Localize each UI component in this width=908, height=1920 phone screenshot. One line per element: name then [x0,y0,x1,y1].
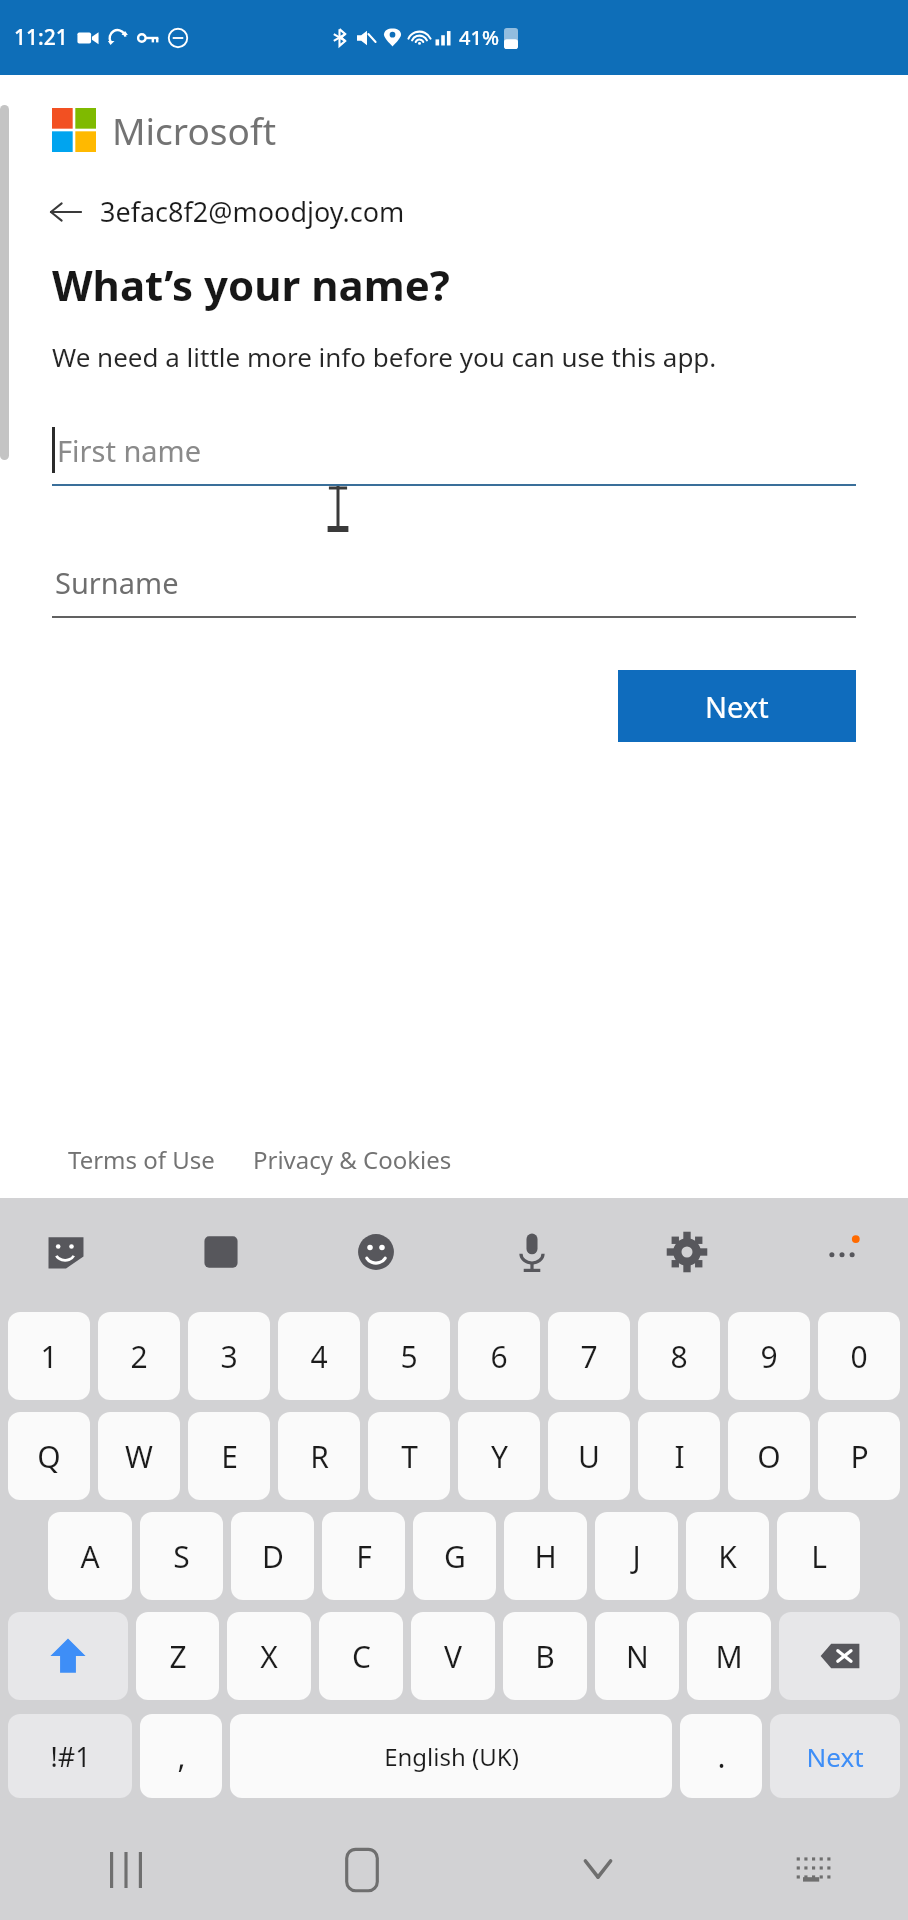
staticText: What’s your name? [52,256,450,313]
button[interactable]: N [595,1612,679,1700]
staticText: C [352,1636,371,1677]
button[interactable]: X [227,1612,311,1700]
staticText: . [717,1736,726,1777]
other: Back [48,194,84,230]
staticText: L [811,1536,827,1577]
button[interactable]: H [504,1512,587,1600]
button[interactable]: Recents [81,1825,171,1915]
button[interactable]: P [818,1412,900,1500]
staticText: 9 [760,1336,778,1377]
button[interactable]: Emoji [344,1220,408,1284]
button[interactable]: First name [52,414,856,486]
button[interactable]: I [638,1412,720,1500]
staticText: R [310,1436,329,1477]
button[interactable]: !#1 [8,1714,132,1798]
button[interactable]: W [98,1412,180,1500]
button[interactable]: A [48,1512,132,1600]
button[interactable]: Privacy & Cookies [253,1143,452,1176]
button[interactable]: English (UK) [230,1714,672,1798]
button[interactable]: More options [810,1220,874,1284]
button[interactable]: Shift [8,1612,128,1700]
button[interactable]: K [686,1512,769,1600]
staticText: , [177,1736,186,1777]
button[interactable]: 9 [728,1312,810,1400]
button[interactable]: U [548,1412,630,1500]
staticText: G [444,1536,466,1577]
staticText: X [260,1636,278,1677]
button[interactable]: V [411,1612,495,1700]
staticText: K [718,1536,737,1577]
button[interactable]: T [368,1412,450,1500]
button[interactable]: Surname [52,546,856,618]
button[interactable]: . [680,1714,762,1798]
button[interactable]: Next [618,670,856,742]
staticText: We need a little more info before you ca… [52,339,717,374]
staticText: U [578,1436,600,1477]
staticText: D [262,1536,284,1577]
staticText: N [626,1636,649,1677]
button[interactable]: Home [317,1825,407,1915]
button[interactable]: Backspace [779,1612,900,1700]
staticText: A [80,1536,100,1577]
staticText: V [444,1636,462,1677]
button[interactable]: Change keyboard [767,1825,857,1915]
button[interactable]: C [319,1612,403,1700]
button[interactable]: 6 [458,1312,540,1400]
button[interactable]: Stickers [34,1220,98,1284]
staticText: First name [57,431,202,470]
button[interactable]: Settings [655,1220,719,1284]
button[interactable]: J [595,1512,678,1600]
staticText: J [632,1536,641,1577]
staticText: Next [705,687,769,726]
button[interactable]: , [140,1714,222,1798]
button[interactable]: 1 [8,1312,90,1400]
button[interactable]: D [231,1512,314,1600]
staticText: 6 [490,1336,508,1377]
button[interactable]: S [140,1512,223,1600]
staticText: F [356,1536,372,1577]
button[interactable]: Terms of Use [68,1143,215,1176]
staticText: P [850,1436,869,1477]
button[interactable]: O [728,1412,810,1500]
button[interactable]: 5 [368,1312,450,1400]
button[interactable]: 8 [638,1312,720,1400]
button[interactable]: Z [136,1612,219,1700]
staticText: Y [491,1436,508,1477]
staticText: English (UK) [384,1740,519,1773]
button[interactable]: B [503,1612,587,1700]
button[interactable]: 3 [188,1312,270,1400]
button[interactable]: F [322,1512,405,1600]
staticText: T [401,1436,418,1477]
staticText: !#1 [50,1738,91,1775]
staticText: 2 [130,1336,148,1377]
button[interactable]: 2 [98,1312,180,1400]
staticText: Microsoft [112,105,276,155]
button[interactable]: 0 [818,1312,900,1400]
staticText: W [125,1436,153,1477]
button[interactable]: E [188,1412,270,1500]
button[interactable]: G [413,1512,496,1600]
staticText: 11:21 [14,23,68,52]
button[interactable]: GIF [189,1220,253,1284]
button[interactable]: M [687,1612,771,1700]
staticText: Next [806,1739,864,1774]
button[interactable]: Next [770,1714,900,1798]
button[interactable]: Y [458,1412,540,1500]
staticText: O [757,1436,781,1477]
staticText: 7 [580,1336,598,1377]
button[interactable]: 4 [278,1312,360,1400]
button[interactable]: Back [48,193,405,230]
button[interactable]: Q [8,1412,90,1500]
staticText: I [674,1436,685,1477]
staticText: Z [169,1636,187,1677]
staticText: Surname [55,563,179,602]
button[interactable]: 7 [548,1312,630,1400]
staticText: Q [37,1436,61,1477]
button[interactable]: R [278,1412,360,1500]
button[interactable]: Hide keyboard [553,1825,643,1915]
button[interactable]: L [777,1512,860,1600]
button[interactable]: Voice input [500,1220,564,1284]
staticText: 1 [40,1336,58,1377]
staticText: B [535,1636,555,1677]
staticText: 0 [850,1336,868,1377]
